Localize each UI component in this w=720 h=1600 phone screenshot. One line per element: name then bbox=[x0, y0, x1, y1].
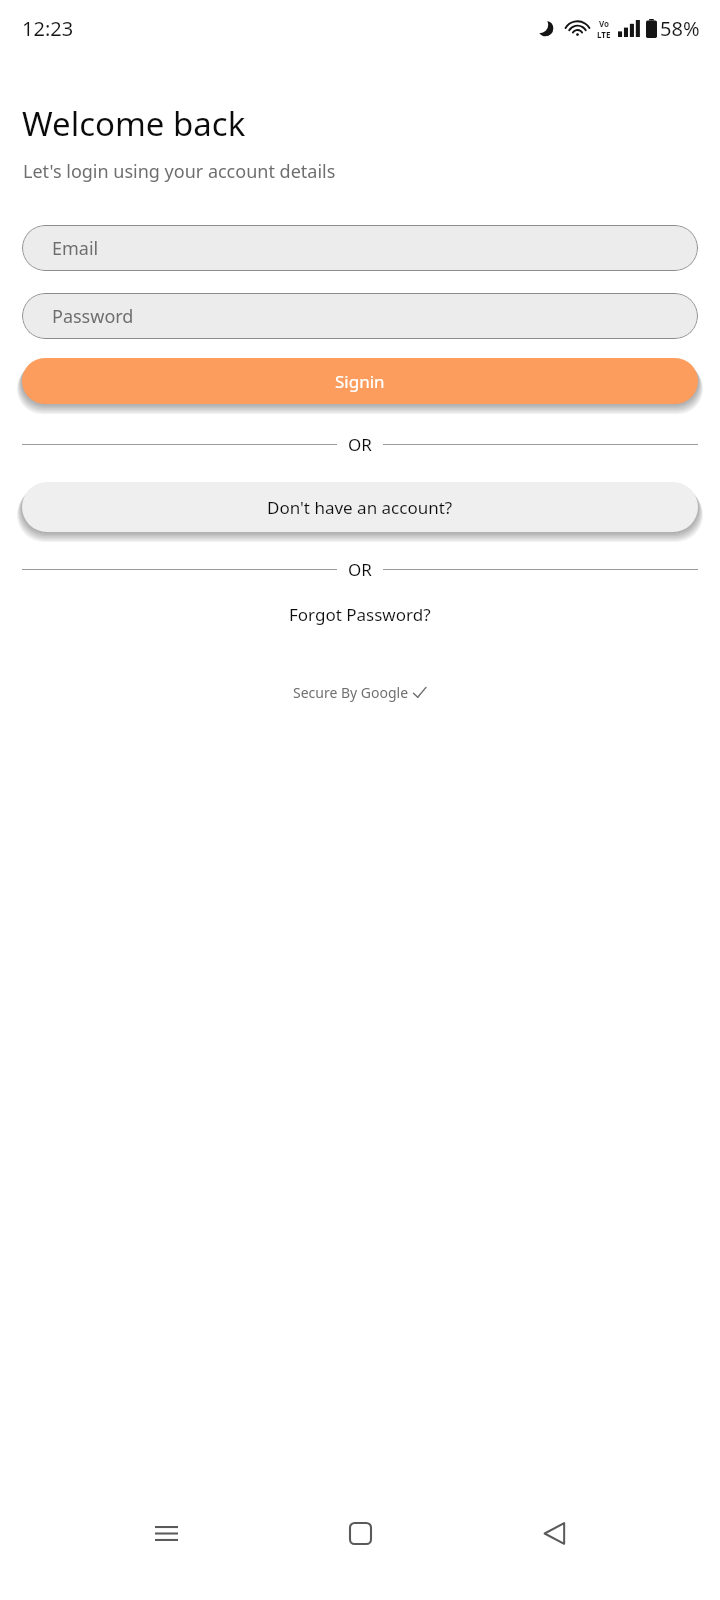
staticText: Email bbox=[52, 236, 99, 261]
staticText: Let's login using your account details bbox=[23, 159, 336, 184]
staticText: Vo bbox=[599, 18, 610, 29]
staticText: Signin bbox=[335, 370, 385, 393]
staticText: LTE bbox=[597, 29, 611, 40]
button[interactable]: Don't have an account? bbox=[22, 482, 698, 532]
staticText: Don't have an account? bbox=[267, 496, 453, 519]
button[interactable]: Back bbox=[526, 1505, 582, 1561]
button[interactable]: Signin bbox=[22, 358, 698, 404]
button[interactable]: Home bbox=[332, 1505, 388, 1561]
staticText: OR bbox=[348, 558, 372, 581]
staticText: 58% bbox=[660, 15, 700, 42]
staticText: OR bbox=[348, 433, 372, 456]
staticText: Forgot Password? bbox=[289, 603, 431, 626]
staticText: Welcome back bbox=[22, 101, 246, 146]
button[interactable]: Recent apps bbox=[138, 1505, 194, 1561]
button[interactable]: Forgot Password? bbox=[0, 603, 720, 626]
staticText: 12:23 bbox=[22, 15, 74, 42]
staticText: Secure By Google bbox=[293, 683, 412, 702]
staticText: Password bbox=[52, 304, 134, 329]
button[interactable]: Password bbox=[22, 293, 698, 339]
button[interactable]: Email bbox=[22, 225, 698, 271]
